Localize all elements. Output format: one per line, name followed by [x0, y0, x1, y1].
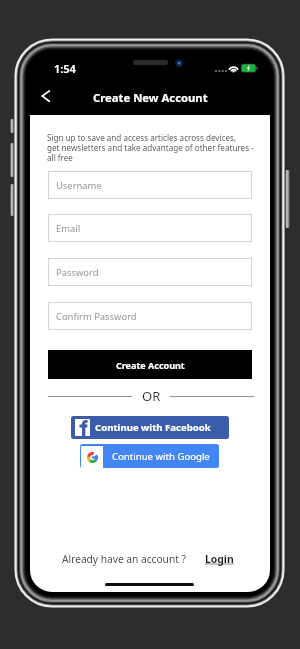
- staticText: Sign up to save and access articles acro…: [47, 132, 255, 163]
- staticText: Username: [56, 179, 102, 192]
- staticText: Already have an account ?: [62, 552, 186, 566]
- button[interactable]: Login: [205, 552, 234, 566]
- staticText: Confirm Password: [56, 310, 137, 323]
- button[interactable]: Back: [33, 81, 59, 111]
- button[interactable]: Continue with Facebook: [71, 416, 229, 439]
- staticText: OR: [142, 387, 161, 405]
- staticText: Continue with Google: [112, 450, 210, 463]
- button[interactable]: Continue with Google: [80, 444, 219, 468]
- staticText: Create Account: [116, 359, 185, 371]
- button[interactable]: Password: [48, 258, 252, 286]
- staticText: 1:54: [54, 61, 76, 76]
- button[interactable]: Create Account: [48, 350, 252, 379]
- staticText: Create New Account: [93, 90, 208, 105]
- staticText: Email: [56, 222, 81, 235]
- button[interactable]: Username: [48, 171, 252, 199]
- staticText: Login: [205, 552, 234, 566]
- button[interactable]: Email: [48, 214, 252, 242]
- staticText: Continue with Facebook: [95, 421, 211, 434]
- staticText: Password: [56, 266, 99, 279]
- button[interactable]: Confirm Password: [48, 302, 252, 330]
